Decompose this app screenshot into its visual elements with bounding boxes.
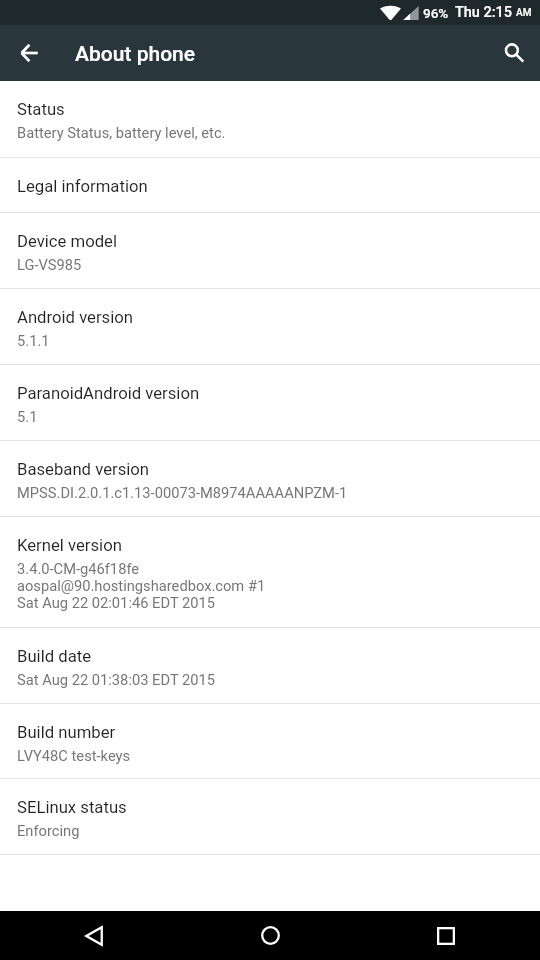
- button[interactable]: Build number: [0, 704, 540, 779]
- staticText: ParanoidAndroid version: [17, 384, 200, 404]
- staticText: 3.4.0-CM-g46f18fe: [17, 560, 140, 577]
- button[interactable]: ParanoidAndroid version: [0, 365, 540, 441]
- button[interactable]: Device model: [0, 213, 540, 289]
- staticText: Status: [17, 100, 65, 120]
- staticText: 5.1.1: [17, 332, 50, 349]
- staticText: LG-VS985: [17, 256, 82, 273]
- staticText: LVY48C test-keys: [17, 747, 131, 764]
- button[interactable]: Baseband version: [0, 441, 540, 517]
- staticText: Legal information: [17, 177, 148, 197]
- staticText: Enforcing: [17, 822, 80, 839]
- staticText: Kernel version: [17, 536, 122, 556]
- staticText: Battery Status, battery level, etc.: [17, 124, 226, 141]
- button[interactable]: Legal information: [0, 158, 540, 213]
- staticText: Build date: [17, 647, 92, 667]
- staticText: aospal@90.hostingsharedbox.com #1: [17, 577, 266, 594]
- button[interactable]: Kernel version: [0, 517, 540, 628]
- staticText: Build number: [17, 723, 116, 743]
- staticText: 5.1: [17, 408, 38, 425]
- staticText: Baseband version: [17, 460, 150, 480]
- button[interactable]: Status: [0, 81, 540, 158]
- button[interactable]: Back: [50, 911, 138, 960]
- staticText: Thu 2:15: [455, 4, 513, 21]
- staticText: 96%: [423, 5, 449, 21]
- button[interactable]: Home: [226, 911, 314, 960]
- staticText: SELinux status: [17, 798, 127, 818]
- button[interactable]: SELinux status: [0, 779, 540, 855]
- staticText: MPSS.DI.2.0.1.c1.13-00073-M8974AAAAANPZM…: [17, 484, 348, 501]
- button[interactable]: Build date: [0, 628, 540, 704]
- staticText: AM: [516, 7, 532, 19]
- button[interactable]: Navigate up: [0, 25, 58, 81]
- staticText: About phone: [75, 42, 196, 67]
- staticText: Sat Aug 22 01:38:03 EDT 2015: [17, 671, 216, 688]
- staticText: Android version: [17, 308, 134, 328]
- staticText: Device model: [17, 232, 118, 252]
- staticText: Sat Aug 22 02:01:46 EDT 2015: [17, 594, 216, 611]
- button[interactable]: Search: [492, 25, 540, 81]
- button[interactable]: Android version: [0, 289, 540, 365]
- button[interactable]: Recent apps: [402, 911, 490, 960]
